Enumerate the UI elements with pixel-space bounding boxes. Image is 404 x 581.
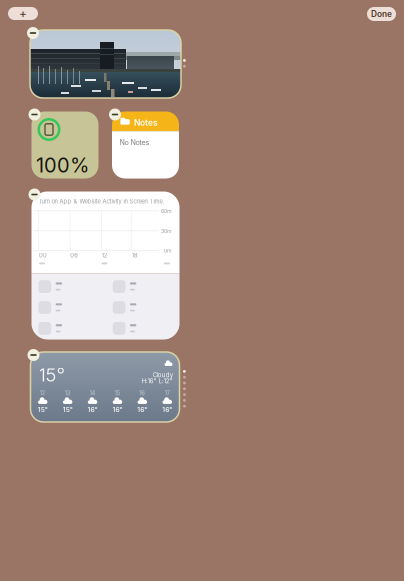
staticText: 00	[39, 252, 47, 259]
staticText: 06	[70, 252, 78, 259]
button[interactable]: Screen Time widget	[31, 191, 179, 339]
staticText: 15°	[63, 405, 73, 413]
staticText: 100%	[36, 153, 89, 177]
staticText: 14	[89, 389, 95, 397]
button[interactable]: Remove widget	[27, 349, 39, 361]
staticText: 15°	[38, 363, 64, 386]
staticText: Cloudy	[153, 371, 173, 379]
staticText: 0m	[164, 247, 172, 254]
button[interactable]: Weather widget	[30, 352, 179, 422]
button[interactable]: Battery widget, 100 percent	[31, 111, 98, 178]
button[interactable]: Notes widget	[112, 111, 179, 178]
staticText: 12	[102, 252, 107, 259]
staticText: 12	[40, 389, 46, 397]
staticText: No Notes	[120, 138, 150, 147]
button[interactable]: Remove widget	[109, 108, 121, 120]
staticText: 16	[139, 389, 145, 397]
staticText: Notes	[134, 118, 158, 128]
button[interactable]: Photos widget	[30, 30, 181, 98]
button[interactable]: Remove widget	[28, 188, 40, 200]
staticText: 18	[132, 252, 138, 259]
staticText: 16°	[162, 405, 172, 413]
button[interactable]: Remove widget	[28, 108, 40, 120]
staticText: 60m	[161, 208, 172, 214]
staticText: 16°	[112, 405, 122, 413]
button[interactable]: Add widget	[8, 7, 38, 20]
staticText: 17	[165, 389, 170, 397]
staticText: Turn on App & Website Activity in Screen…	[38, 198, 164, 205]
staticText: 15	[114, 389, 120, 397]
staticText: 16°	[137, 405, 147, 413]
button[interactable]: Remove widget	[27, 27, 39, 39]
staticText: Done	[371, 9, 392, 19]
staticText: +	[19, 6, 27, 21]
staticText: H:16° L:12°	[142, 377, 173, 385]
staticText: 30m	[161, 228, 172, 234]
staticText: 16°	[87, 405, 97, 413]
button[interactable]: Done	[367, 7, 396, 21]
staticText: 15°	[38, 405, 48, 413]
staticText: 13	[65, 389, 71, 397]
